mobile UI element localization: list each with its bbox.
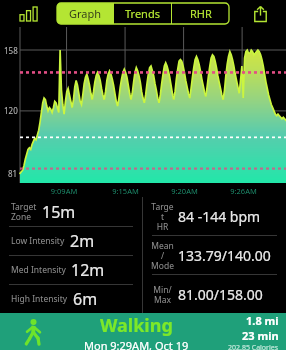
staticText: 81.00/158.00 bbox=[178, 285, 263, 304]
button[interactable]: Mean/ Mode bbox=[150, 236, 283, 274]
staticText: 12m bbox=[71, 259, 105, 281]
other: Walking activity bbox=[22, 317, 44, 347]
staticText: Trends bbox=[125, 6, 160, 21]
staticText: 9:26AM bbox=[214, 186, 273, 196]
staticText: Min/ Max bbox=[150, 284, 175, 305]
button[interactable]: Graph bbox=[57, 3, 113, 24]
staticText: Low Intensity bbox=[11, 235, 65, 247]
staticText: 158 bbox=[4, 45, 18, 56]
staticText: 133.79/140.00 bbox=[178, 246, 271, 265]
button[interactable]: Min/ Max bbox=[150, 275, 283, 313]
button[interactable]: Charts bbox=[10, 1, 46, 26]
staticText: 9:15AM bbox=[96, 186, 155, 196]
staticText: 15m bbox=[42, 201, 76, 223]
staticText: Mean/ Mode bbox=[150, 240, 175, 271]
staticText: 202.85 Calories bbox=[228, 343, 279, 350]
staticText: 84 -144 bpm bbox=[178, 207, 261, 226]
staticText: High Intensity bbox=[11, 293, 68, 305]
staticText: 81 bbox=[8, 168, 18, 179]
staticText: Target Zone bbox=[11, 201, 37, 222]
staticText: 6m bbox=[73, 288, 98, 310]
staticText: Walking bbox=[100, 313, 173, 338]
button[interactable]: Target HR bbox=[150, 197, 283, 235]
button[interactable]: High Intensity bbox=[11, 285, 136, 313]
staticText: 1.8 mi bbox=[246, 313, 279, 328]
staticText: Med Intensity bbox=[11, 264, 66, 276]
staticText: 120 bbox=[4, 105, 18, 116]
staticText: Graph bbox=[69, 6, 102, 21]
staticText: 23 min bbox=[242, 328, 279, 343]
button[interactable]: Med Intensity bbox=[11, 256, 136, 284]
staticText: 2m bbox=[70, 230, 95, 252]
button[interactable]: Trends bbox=[114, 3, 171, 24]
button[interactable]: Target Zone bbox=[11, 197, 136, 226]
button[interactable]: Low Intensity bbox=[11, 227, 136, 255]
button[interactable]: RHR bbox=[172, 3, 229, 24]
staticText: 9:20AM bbox=[155, 186, 214, 196]
staticText: Target HR bbox=[150, 201, 175, 232]
button[interactable]: Share bbox=[244, 1, 276, 26]
staticText: RHR bbox=[190, 6, 212, 21]
staticText: Mon 9:29AM, Oct 19 bbox=[84, 338, 189, 350]
button[interactable]: Walking activity bbox=[0, 313, 286, 350]
staticText: 9:09AM bbox=[32, 186, 96, 196]
